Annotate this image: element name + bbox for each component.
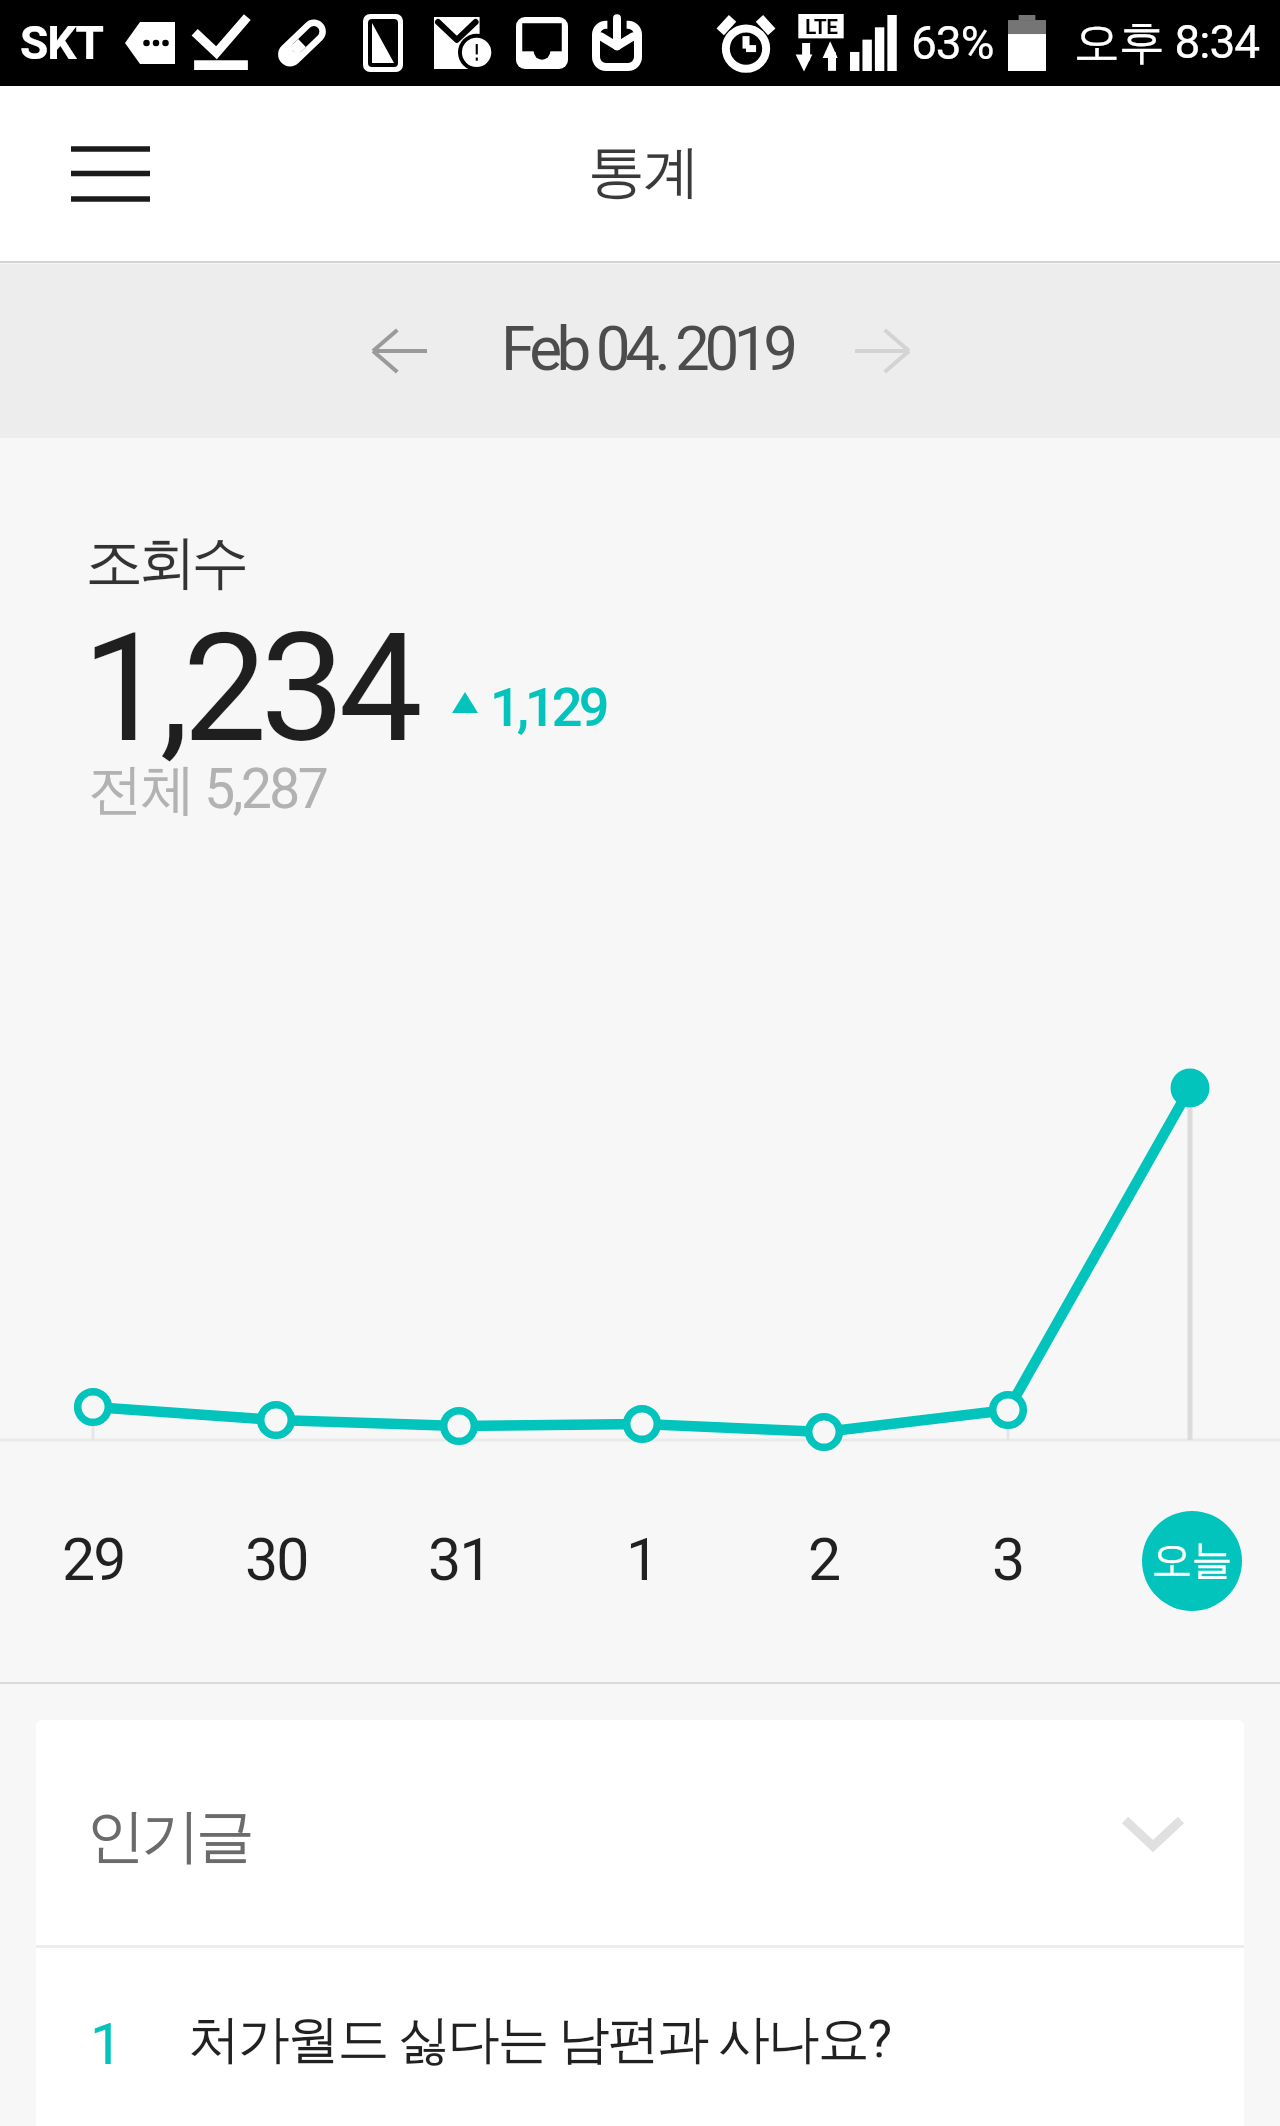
button[interactable]: 인기글 [36, 1720, 1244, 1945]
staticText: SKT [20, 16, 103, 70]
staticText: 63% [911, 16, 994, 70]
staticText: 31 [428, 1525, 491, 1594]
button[interactable]: 오늘 [1142, 1511, 1242, 1611]
staticText: 1,129 [490, 676, 606, 739]
staticText: 전체 5,287 [88, 755, 327, 824]
staticText: Feb 04. 2019 [501, 312, 793, 385]
staticText: 2 [808, 1525, 840, 1594]
staticText: 통계 [589, 136, 699, 208]
staticText: 30 [245, 1525, 308, 1594]
staticText: 1 [90, 2010, 123, 2078]
staticText: 오늘 [1152, 1535, 1232, 1587]
staticText: 인기글 [88, 1799, 253, 1873]
button[interactable]: Next day [838, 306, 928, 396]
staticText: 1 [626, 1525, 658, 1594]
staticText: 3 [992, 1525, 1024, 1594]
staticText: 오후 8:34 [1074, 14, 1260, 72]
staticText: 29 [62, 1525, 125, 1594]
button[interactable]: Previous day [354, 306, 444, 396]
staticText: 1,234 [82, 601, 417, 777]
button[interactable]: 1 [36, 1948, 1244, 2126]
staticText: 조회수 [88, 526, 247, 599]
button[interactable]: Open navigation menu [55, 118, 165, 228]
staticText: 처가월드 싫다는 남편과 사나요? [188, 2007, 890, 2073]
staticText: LTE [805, 15, 838, 40]
